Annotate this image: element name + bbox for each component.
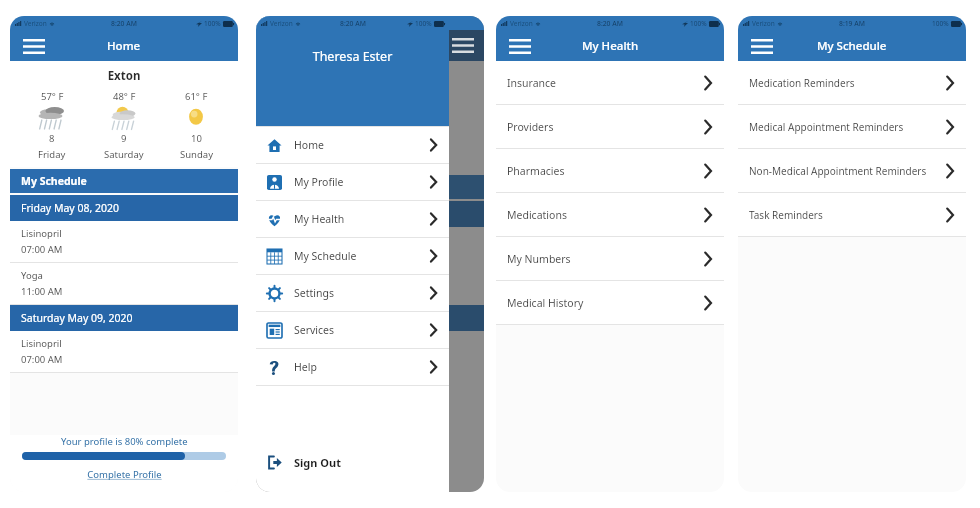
button[interactable]: Friday May 08, 2020 xyxy=(10,195,238,221)
staticText: 8:20 AM xyxy=(340,19,366,28)
staticText: Medical Appointment Reminders xyxy=(749,120,904,134)
button[interactable]: Sign Out xyxy=(256,440,449,484)
staticText: Yoga xyxy=(266,271,288,284)
button[interactable]: Task Reminders xyxy=(738,193,966,236)
staticText: Pharmacies xyxy=(507,164,565,178)
staticText: Exton xyxy=(10,68,238,84)
staticText: My Schedule xyxy=(294,249,357,263)
staticText: Saturday xyxy=(104,148,144,161)
staticText: 100% xyxy=(415,19,432,28)
button[interactable]: Help xyxy=(256,349,449,385)
staticText: Non-Medical Appointment Reminders xyxy=(749,164,927,178)
staticText: Medications xyxy=(507,208,567,222)
button[interactable]: My Health xyxy=(256,201,449,237)
staticText: My Profile xyxy=(294,175,344,189)
staticText: Settings xyxy=(294,286,334,300)
staticText: Friday May 08, 2020 xyxy=(21,201,120,215)
button[interactable]: Lisinopril xyxy=(10,221,238,262)
staticText: 8:19 AM xyxy=(839,19,865,28)
button[interactable]: Settings xyxy=(256,275,449,311)
button[interactable]: My Schedule xyxy=(10,169,238,193)
staticText: My Health xyxy=(582,38,639,54)
staticText: 100% xyxy=(690,19,707,28)
staticText: Friday xyxy=(38,148,66,161)
staticText: Complete Profile xyxy=(87,468,162,481)
staticText: 57° F xyxy=(41,90,64,103)
button[interactable]: My Schedule xyxy=(256,238,449,274)
button[interactable]: Medications xyxy=(496,193,724,236)
staticText: Sunday xyxy=(180,148,213,161)
button[interactable]: My Profile xyxy=(256,164,449,200)
staticText: 9 xyxy=(121,132,127,145)
staticText: 8:20 AM xyxy=(111,19,137,28)
button[interactable]: Medical History xyxy=(496,281,724,324)
staticText: Home xyxy=(107,38,141,54)
staticText: Sign Out xyxy=(294,455,341,470)
staticText: My Health xyxy=(294,212,345,226)
button[interactable]: Complete Profile xyxy=(83,467,166,482)
staticText: Theresa Ester xyxy=(256,48,449,65)
staticText: 07:00 xyxy=(266,353,291,366)
staticText: 11:00 AM xyxy=(21,285,63,298)
button[interactable]: Lisinopril xyxy=(10,331,238,372)
staticText: My Numbers xyxy=(507,252,571,266)
staticText: Frida xyxy=(266,207,291,221)
button[interactable]: Services xyxy=(256,312,449,348)
staticText: Help xyxy=(294,360,317,374)
staticText: Yoga xyxy=(21,269,43,282)
staticText: Verizon xyxy=(270,19,293,28)
staticText: My S xyxy=(266,180,291,194)
button[interactable]: Providers xyxy=(496,105,724,148)
staticText: 07:00 AM xyxy=(21,243,63,256)
staticText: Services xyxy=(294,323,335,337)
staticText: My Schedule xyxy=(817,38,887,54)
staticText: 8:20 AM xyxy=(597,19,623,28)
staticText: Task Reminders xyxy=(749,208,823,222)
button[interactable]: Pharmacies xyxy=(496,149,724,192)
staticText: Saturday May 09, 2020 xyxy=(21,311,133,325)
button[interactable]: Medical Appointment Reminders xyxy=(738,105,966,148)
button[interactable]: Menu xyxy=(509,38,531,54)
staticText: 10 xyxy=(191,132,202,145)
staticText: Verizon xyxy=(24,19,47,28)
staticText: 07:00 AM xyxy=(21,353,63,366)
button[interactable]: My Numbers xyxy=(496,237,724,280)
button[interactable]: Non-Medical Appointment Reminders xyxy=(738,149,966,192)
staticText: Home xyxy=(294,138,324,152)
staticText: 100% xyxy=(204,19,221,28)
staticText: Providers xyxy=(507,120,554,134)
staticText: Verizon xyxy=(752,19,775,28)
button[interactable]: Menu xyxy=(751,38,773,54)
staticText: Satu xyxy=(266,311,288,325)
staticText: Verizon xyxy=(510,19,533,28)
staticText: 48° F xyxy=(113,90,136,103)
staticText: 100% xyxy=(932,19,949,28)
staticText: 11:00 xyxy=(266,287,291,300)
staticText: Medical History xyxy=(507,296,584,310)
staticText: Insurance xyxy=(507,76,557,90)
button[interactable]: Home xyxy=(256,127,449,163)
button[interactable]: Medication Reminders xyxy=(738,61,966,104)
button[interactable]: Menu xyxy=(23,38,45,54)
staticText: 07:00 xyxy=(266,249,291,262)
staticText: Lisin xyxy=(266,337,287,350)
button[interactable]: Yoga xyxy=(10,263,238,304)
staticText: 8 xyxy=(49,132,55,145)
staticText: Lisinopril xyxy=(21,227,62,240)
button[interactable]: Insurance xyxy=(496,61,724,104)
staticText: F xyxy=(266,133,271,145)
button[interactable]: Saturday May 09, 2020 xyxy=(10,305,238,331)
staticText: 61° F xyxy=(185,90,208,103)
staticText: My Schedule xyxy=(21,174,87,188)
staticText: Your profile is 80% complete xyxy=(61,435,188,448)
staticText: Medication Reminders xyxy=(749,76,855,90)
staticText: Lisinopril xyxy=(21,337,62,350)
staticText: Lisin xyxy=(266,233,287,246)
